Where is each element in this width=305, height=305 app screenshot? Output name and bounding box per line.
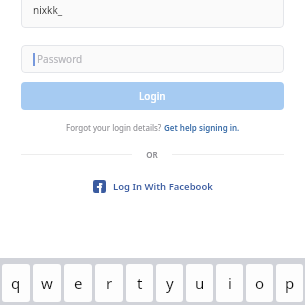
- staticText: nixkk_: [33, 3, 63, 17]
- staticText: Password: [37, 52, 83, 66]
- staticText: o: [255, 273, 265, 293]
- button[interactable]: w: [33, 264, 61, 302]
- button[interactable]: Log In With Facebook: [0, 177, 305, 196]
- staticText: e: [74, 273, 83, 293]
- staticText: Get help signing in.: [164, 122, 240, 133]
- staticText: i: [228, 273, 232, 293]
- staticText: r: [106, 273, 113, 293]
- button[interactable]: i: [216, 264, 243, 302]
- button[interactable]: y: [156, 264, 183, 302]
- staticText: t: [137, 273, 143, 293]
- button[interactable]: e: [64, 264, 92, 302]
- button[interactable]: Password: [21, 45, 284, 73]
- staticText: Forgot your login details?: [66, 122, 164, 133]
- staticText: OR: [146, 149, 158, 160]
- staticText: Log In With Facebook: [113, 180, 213, 193]
- button[interactable]: Get help signing in.: [164, 122, 240, 133]
- button[interactable]: q: [2, 264, 30, 302]
- button[interactable]: u: [186, 264, 213, 302]
- staticText: y: [166, 273, 174, 293]
- staticText: Login: [139, 89, 166, 103]
- button[interactable]: t: [126, 264, 153, 302]
- button[interactable]: nixkk_: [21, 0, 284, 28]
- staticText: w: [41, 273, 53, 293]
- button[interactable]: p: [276, 264, 303, 302]
- button[interactable]: o: [246, 264, 273, 302]
- button[interactable]: Login: [21, 82, 284, 110]
- staticText: q: [11, 273, 21, 293]
- staticText: u: [195, 273, 205, 293]
- button[interactable]: r: [95, 264, 123, 302]
- staticText: p: [285, 273, 295, 293]
